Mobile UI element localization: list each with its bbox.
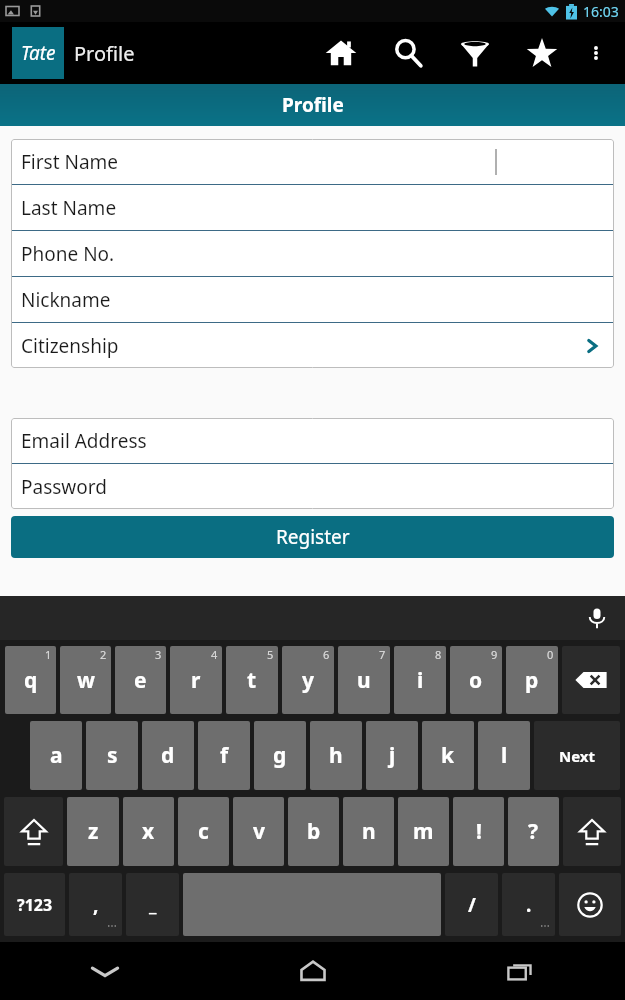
staticText: 3 bbox=[155, 647, 162, 662]
button[interactable]: Backspace bbox=[562, 646, 620, 714]
staticText: r bbox=[191, 666, 201, 695]
button[interactable]: g bbox=[254, 721, 306, 790]
button[interactable]: More options bbox=[575, 22, 617, 84]
button[interactable]: Home bbox=[307, 22, 374, 84]
button[interactable]: c bbox=[178, 797, 229, 866]
button[interactable]: j bbox=[366, 721, 418, 790]
button[interactable]: s bbox=[86, 721, 138, 790]
button[interactable]: Favourites bbox=[508, 22, 575, 84]
button[interactable]: Emoji bbox=[559, 873, 621, 936]
staticText: Citizenship bbox=[21, 333, 119, 359]
staticText: x bbox=[142, 817, 155, 846]
button[interactable]: ?123 bbox=[4, 873, 65, 936]
staticText: h bbox=[329, 741, 343, 770]
button[interactable]: Shift bbox=[563, 797, 621, 866]
button[interactable]: Next bbox=[534, 721, 620, 790]
staticText: ! bbox=[476, 817, 482, 846]
staticText: l bbox=[501, 741, 508, 770]
staticText: k bbox=[441, 741, 455, 770]
button[interactable]: m bbox=[398, 797, 449, 866]
button[interactable]: Last Name bbox=[11, 185, 614, 230]
button[interactable]: i bbox=[394, 646, 446, 714]
button[interactable]: First Name bbox=[11, 139, 614, 184]
staticText: / bbox=[468, 892, 476, 918]
staticText: 6 bbox=[323, 647, 330, 662]
staticText: 4 bbox=[211, 647, 218, 662]
button[interactable]: Password bbox=[11, 464, 614, 509]
button[interactable]: f bbox=[198, 721, 250, 790]
button[interactable]: Nickname bbox=[11, 277, 614, 322]
button[interactable]: Register bbox=[11, 516, 614, 558]
button[interactable]: e bbox=[115, 646, 166, 714]
button[interactable]: a bbox=[30, 721, 82, 790]
button[interactable]: w bbox=[60, 646, 111, 714]
button[interactable]: ! bbox=[453, 797, 504, 866]
staticText: _ bbox=[149, 892, 157, 917]
staticText: v bbox=[253, 817, 265, 846]
staticText: . bbox=[526, 892, 532, 918]
staticText: c bbox=[198, 817, 209, 846]
staticText: Next bbox=[559, 746, 596, 766]
staticText: Email Address bbox=[21, 428, 147, 454]
staticText: First Name bbox=[21, 149, 119, 175]
button[interactable]: v bbox=[233, 797, 284, 866]
button[interactable]: r bbox=[170, 646, 222, 714]
button[interactable]: Phone No. bbox=[11, 231, 614, 276]
staticText: b bbox=[307, 817, 321, 846]
button[interactable]: Citizenship bbox=[11, 323, 614, 368]
staticText: Last Name bbox=[21, 195, 117, 221]
button[interactable]: t bbox=[226, 646, 278, 714]
button[interactable]: Hide keyboard bbox=[0, 942, 209, 1000]
button[interactable]: l bbox=[478, 721, 530, 790]
staticText: z bbox=[88, 817, 99, 846]
staticText: ? bbox=[528, 817, 539, 846]
button[interactable]: d bbox=[142, 721, 194, 790]
button[interactable]: b bbox=[288, 797, 339, 866]
staticText: p bbox=[525, 666, 539, 695]
button[interactable]: n bbox=[343, 797, 394, 866]
staticText: d bbox=[161, 741, 175, 770]
button[interactable]: z bbox=[67, 797, 119, 866]
button[interactable]: h bbox=[310, 721, 362, 790]
staticText: w bbox=[77, 666, 95, 695]
button[interactable]: ? bbox=[508, 797, 559, 866]
button[interactable]: Filter bbox=[441, 22, 508, 84]
button[interactable]: y bbox=[282, 646, 334, 714]
staticText: q bbox=[24, 666, 38, 695]
button[interactable]: _ bbox=[126, 873, 179, 936]
staticText: u bbox=[357, 666, 371, 695]
button[interactable]: u bbox=[338, 646, 390, 714]
button[interactable]: Email Address bbox=[11, 418, 614, 463]
button[interactable]: p bbox=[506, 646, 558, 714]
button[interactable]: / bbox=[445, 873, 498, 936]
staticText: , bbox=[93, 892, 99, 918]
staticText: m bbox=[413, 817, 434, 846]
staticText: s bbox=[107, 741, 118, 770]
staticText: i bbox=[417, 666, 424, 695]
staticText: Nickname bbox=[21, 287, 111, 313]
staticText: Password bbox=[21, 474, 107, 500]
button[interactable]: . bbox=[502, 873, 555, 936]
button[interactable]: q bbox=[5, 646, 56, 714]
button[interactable]: , bbox=[69, 873, 122, 936]
staticText: 0 bbox=[547, 647, 554, 662]
staticText: o bbox=[469, 666, 483, 695]
staticText: Phone No. bbox=[21, 241, 115, 267]
staticText: 1 bbox=[45, 647, 52, 662]
staticText: n bbox=[362, 817, 376, 846]
staticText: Profile bbox=[74, 40, 135, 67]
button[interactable]: Voice input bbox=[569, 596, 625, 640]
staticText: Profile bbox=[282, 92, 344, 118]
staticText: ?123 bbox=[17, 894, 53, 916]
button[interactable]: Tate bbox=[12, 27, 64, 79]
button[interactable]: Search bbox=[374, 22, 441, 84]
button[interactable]: Home bbox=[209, 942, 417, 1000]
button[interactable]: x bbox=[123, 797, 174, 866]
button[interactable]: Shift bbox=[4, 797, 63, 866]
button[interactable]: k bbox=[422, 721, 474, 790]
staticText: f bbox=[220, 741, 229, 770]
button[interactable]: o bbox=[450, 646, 502, 714]
button[interactable]: Recent apps bbox=[417, 942, 625, 1000]
staticText: Tate bbox=[21, 40, 56, 66]
